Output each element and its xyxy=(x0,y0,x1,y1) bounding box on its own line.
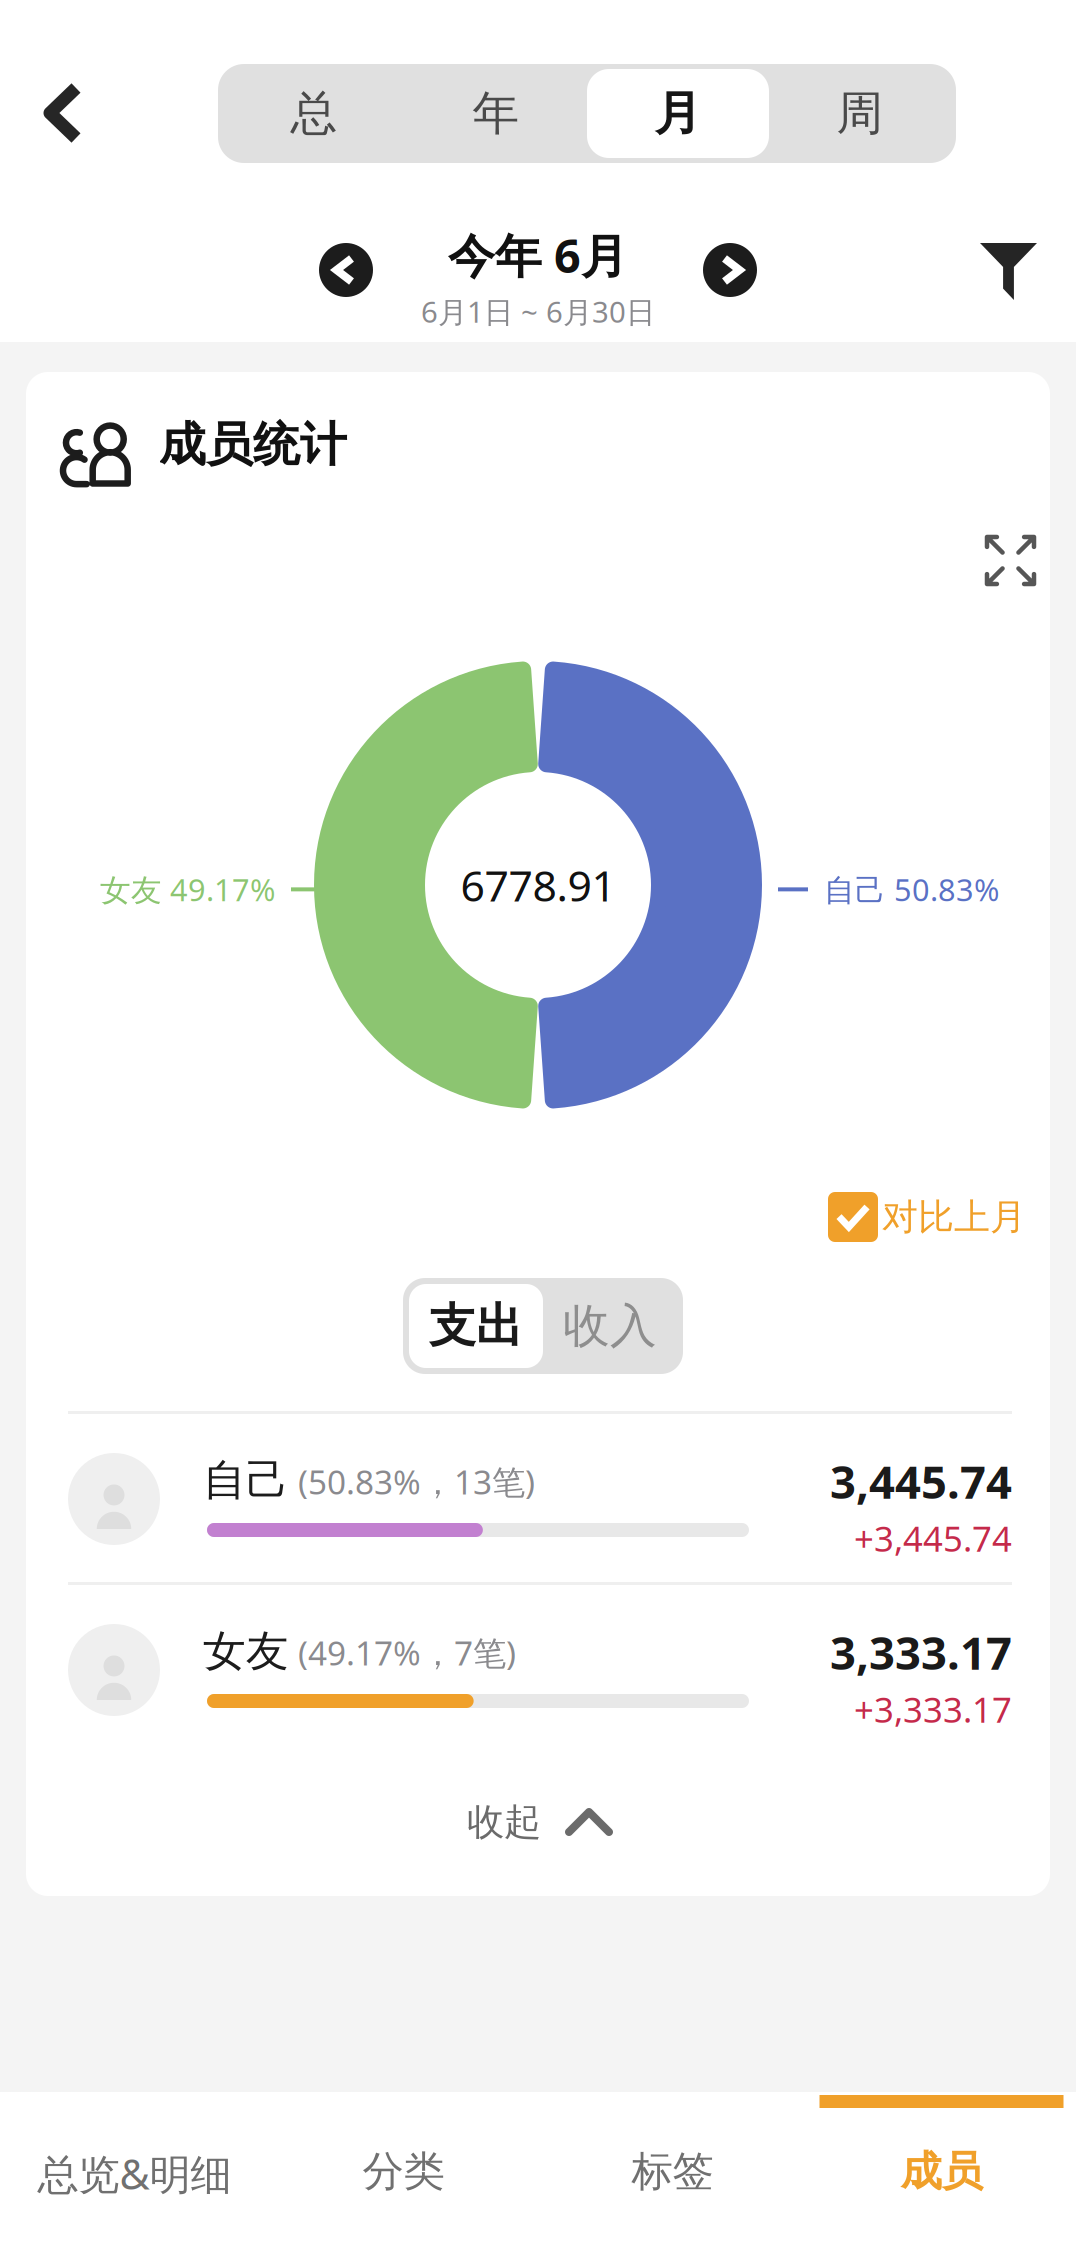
staticText: 收入 xyxy=(563,1297,657,1355)
staticText: 3,445.74 xyxy=(830,1451,1012,1511)
staticText: 自己 50.83% xyxy=(824,869,999,910)
button[interactable]: 总览&明细 xyxy=(0,2092,269,2241)
button[interactable]: 成员 xyxy=(807,2092,1076,2241)
staticText: 总览&明细 xyxy=(37,2146,231,2201)
button[interactable]: 总 xyxy=(223,69,405,158)
button[interactable]: 自己 xyxy=(26,1411,1050,1587)
staticText: 6月1日 ~ 6月30日 xyxy=(421,292,655,331)
button[interactable]: 分类 xyxy=(269,2092,538,2241)
staticText: 今年 6月 xyxy=(448,224,628,286)
staticText: 对比上月 xyxy=(882,1195,1026,1239)
staticText: 6778.91 xyxy=(460,857,615,913)
button[interactable]: 标签 xyxy=(538,2092,807,2241)
button[interactable]: 周 xyxy=(769,69,951,158)
staticText: 女友 49.17% xyxy=(100,869,275,910)
button[interactable]: Previous month xyxy=(300,224,392,316)
button[interactable]: 对比上月 xyxy=(828,1192,1026,1242)
staticText: 成员 xyxy=(900,2146,982,2197)
button[interactable]: 支出 xyxy=(409,1284,543,1368)
staticText: 成员统计 xyxy=(159,416,347,473)
staticText: 年 xyxy=(472,85,519,142)
staticText: 分类 xyxy=(362,2146,444,2197)
staticText: 周 xyxy=(836,85,883,142)
staticText: 标签 xyxy=(631,2146,713,2197)
button[interactable]: 收起 xyxy=(26,1757,1050,1887)
staticText: +3,445.74 xyxy=(854,1515,1012,1561)
staticText: (50.83%，13笔) xyxy=(289,1459,535,1504)
staticText: 女友 xyxy=(203,1625,289,1677)
staticText: 自己 xyxy=(203,1454,289,1506)
staticText: 总 xyxy=(290,85,337,142)
staticText: +3,333.17 xyxy=(854,1686,1012,1732)
button[interactable]: Expand chart xyxy=(969,519,1052,602)
button[interactable]: 年 xyxy=(405,69,587,158)
button[interactable]: Next month xyxy=(684,224,776,316)
button[interactable]: 月 xyxy=(587,69,769,158)
staticText: 月 xyxy=(654,85,701,142)
button[interactable]: 收入 xyxy=(543,1284,677,1368)
staticText: 收起 xyxy=(467,1799,541,1845)
staticText: 支出 xyxy=(429,1297,523,1355)
button[interactable]: Filter xyxy=(950,213,1067,330)
staticText: (49.17%，7笔) xyxy=(289,1630,516,1675)
button[interactable]: Back xyxy=(12,52,114,174)
staticText: 3,333.17 xyxy=(830,1622,1012,1682)
button[interactable]: 女友 xyxy=(26,1582,1050,1758)
